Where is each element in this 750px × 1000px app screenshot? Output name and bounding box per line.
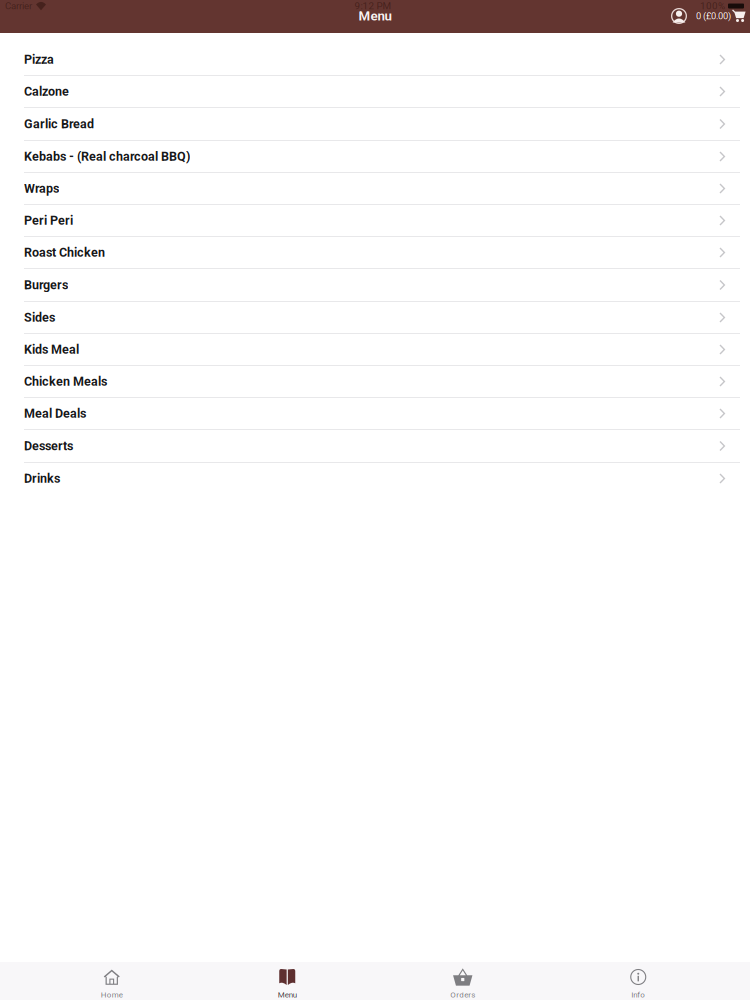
staticText: Info [631, 990, 645, 999]
staticText: Wraps [24, 181, 59, 196]
button[interactable]: 0 (£0.00) [696, 9, 746, 22]
button[interactable]: Home [24, 962, 199, 1000]
button[interactable]: Burgers [0, 269, 750, 302]
staticText: Garlic Bread [24, 117, 94, 131]
staticText: Roast Chicken [24, 245, 105, 260]
button[interactable]: Peri Peri [0, 205, 750, 237]
button[interactable]: Menu [199, 962, 375, 1000]
staticText: Drinks [24, 471, 60, 486]
staticText: Pizza [24, 52, 54, 67]
staticText: Desserts [24, 439, 73, 453]
staticText: Menu [358, 8, 391, 24]
button[interactable]: Wraps [0, 173, 750, 205]
staticText: Menu [278, 990, 297, 999]
button[interactable]: Orders [375, 962, 550, 1000]
button[interactable]: Calzone [0, 76, 750, 108]
staticText: Carrier [5, 0, 32, 12]
button[interactable]: Sides [0, 302, 750, 334]
staticText: 9:12 PM [354, 0, 391, 12]
staticText: Kids Meal [24, 342, 79, 357]
staticText: Burgers [24, 278, 68, 292]
button[interactable]: Desserts [0, 430, 750, 463]
staticText: Chicken Meals [24, 374, 107, 389]
button[interactable]: Kebabs - (Real charcoal BBQ) [0, 141, 750, 173]
staticText: Orders [450, 990, 475, 999]
staticText: 100% [700, 0, 725, 12]
button[interactable]: Roast Chicken [0, 237, 750, 269]
button[interactable]: Meal Deals [0, 398, 750, 430]
staticText: Sides [24, 310, 55, 325]
button[interactable]: Account [671, 8, 687, 24]
button[interactable]: Drinks [0, 463, 750, 495]
staticText: Calzone [24, 84, 69, 99]
staticText: Peri Peri [24, 213, 73, 228]
button[interactable]: Kids Meal [0, 334, 750, 366]
button[interactable]: Info [550, 962, 726, 1000]
staticText: Kebabs - (Real charcoal BBQ) [24, 149, 190, 164]
button[interactable]: Chicken Meals [0, 366, 750, 398]
staticText: 0 (£0.00) [696, 10, 731, 21]
staticText: Home [101, 990, 123, 999]
button[interactable]: Garlic Bread [0, 108, 750, 141]
staticText: Meal Deals [24, 406, 86, 421]
button[interactable]: Pizza [0, 44, 750, 76]
